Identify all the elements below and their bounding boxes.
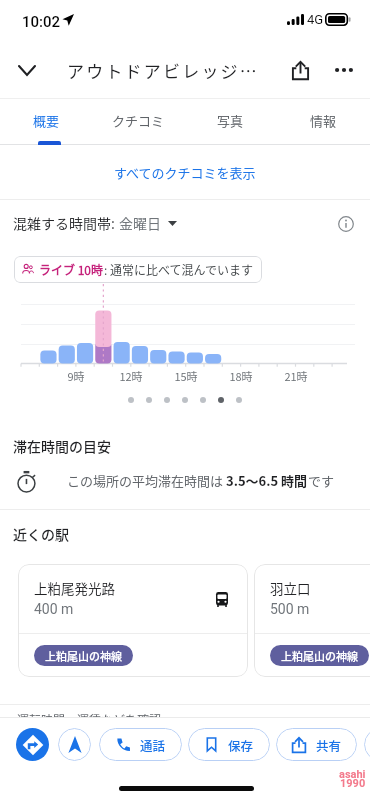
- staticText: です: [308, 471, 335, 490]
- staticText: 金曜日: [119, 213, 161, 233]
- staticText: 共有: [316, 736, 342, 754]
- button[interactable]: 上粕尾山の神線: [270, 645, 369, 666]
- staticText: 羽立口: [270, 578, 311, 598]
- button[interactable]: More options: [324, 50, 364, 90]
- staticText: 滞在時間の目安: [13, 436, 111, 456]
- button[interactable]: 金曜日: [119, 213, 177, 233]
- staticText: 上粕尾山の神線: [281, 648, 358, 664]
- button[interactable]: 概要: [0, 99, 92, 145]
- staticText: 近くの駅: [13, 524, 69, 544]
- button[interactable]: Info: [334, 212, 358, 236]
- staticText: 400 m: [34, 601, 74, 617]
- button[interactable]: Directions: [16, 728, 49, 761]
- button[interactable]: 上粕尾発光路: [18, 564, 248, 677]
- button[interactable]: すべてのクチコミを表示: [0, 145, 370, 199]
- staticText: asahi: [339, 768, 366, 781]
- staticText: 上粕尾山の神線: [45, 648, 122, 664]
- button[interactable]: Collapse: [7, 50, 47, 90]
- staticText: 15時: [170, 368, 202, 384]
- staticText: ライブ 10時: [39, 261, 104, 278]
- staticText: 運転時間・運賃などを確認: [17, 711, 162, 728]
- button[interactable]: 通話: [99, 728, 182, 761]
- staticText: クチコミ: [112, 111, 165, 130]
- button[interactable]: 保存: [188, 728, 270, 761]
- staticText: 写真: [217, 111, 244, 130]
- staticText: 18時: [225, 368, 257, 384]
- staticText: 1990: [340, 777, 366, 790]
- button[interactable]: クチコミ: [92, 99, 184, 145]
- staticText: 3.5〜6.5 時間: [226, 471, 308, 490]
- button[interactable]: 羽立口: [254, 564, 370, 677]
- staticText: 上粕尾発光路: [34, 578, 115, 598]
- staticText: 12時: [115, 368, 147, 384]
- staticText: 情報: [310, 111, 337, 130]
- staticText: 保存: [228, 736, 254, 754]
- staticText: 500 m: [270, 601, 310, 617]
- staticText: : 通常に比べて混んでいます: [104, 261, 253, 278]
- staticText: 通話: [140, 736, 166, 754]
- staticText: 4G: [307, 12, 324, 27]
- staticText: 10:02: [22, 13, 61, 31]
- button[interactable]: 写真: [184, 99, 277, 145]
- button[interactable]: Share: [280, 50, 320, 90]
- staticText: この場所の平均滞在時間は: [67, 471, 226, 490]
- button[interactable]: 情報: [277, 99, 370, 145]
- staticText: すべてのクチコミを表示: [114, 163, 256, 182]
- button[interactable]: 共有: [276, 728, 357, 761]
- staticText: 9時: [60, 368, 92, 384]
- button[interactable]: 上粕尾山の神線: [34, 645, 133, 666]
- staticText: 21時: [280, 368, 312, 384]
- staticText: 概要: [33, 111, 60, 130]
- button[interactable]: Navigate: [58, 728, 91, 761]
- staticText: アウトドアビレッジ…: [67, 58, 259, 83]
- staticText: 混雑する時間帯:: [13, 213, 119, 233]
